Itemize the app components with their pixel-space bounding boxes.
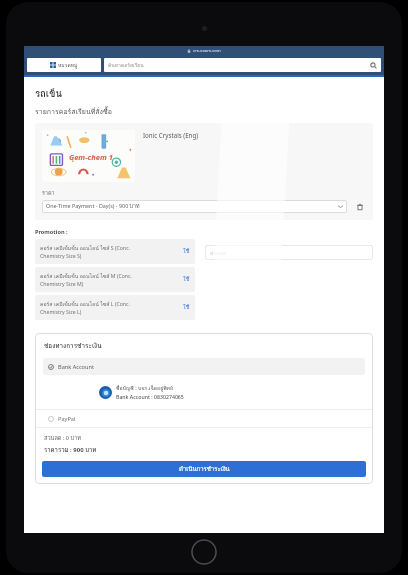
staticText: คอร์ส เคมีเข้มข้น ออนไลน์ ไซส์ S (Conc. … (40, 244, 183, 259)
staticText: รถเข็น (35, 86, 63, 101)
staticText: cre-exam.com (193, 48, 221, 54)
staticText: คอร์ส เคมีเข้มข้น ออนไลน์ ไซส์ L (Conc. … (40, 300, 183, 315)
button[interactable]: Bank Account (43, 358, 365, 375)
staticText: คอร์ส เคมีเข้มข้น ออนไลน์ ไซส์ M (Conc. … (40, 272, 183, 287)
staticText: ชื่อบัญชี : บจก.เจ็ดอยู่พิทย์ (116, 384, 174, 392)
button[interactable]: คอร์ส เคมีเข้มข้น ออนไลน์ ไซส์ S (Conc. … (35, 239, 195, 264)
staticText: ราคา (42, 189, 55, 198)
staticText: ส่วนลด (210, 249, 227, 257)
staticText: Ionic Crystals (Eng) (143, 131, 199, 139)
button[interactable]: ส่วนลด (205, 245, 373, 260)
staticText: Bank Account : 0830274065 (116, 393, 184, 400)
staticText: หมวดหมู่ (58, 61, 78, 69)
staticText: Gem-chem 1 (69, 152, 113, 162)
button[interactable]: คอร์ส เคมีเข้มข้น ออนไลน์ ไซส์ L (Conc. … (35, 295, 195, 320)
staticText: ค้นหาคอร์สเรียน (108, 61, 370, 69)
staticText: ดำเนินการชำระเงิน (179, 464, 230, 474)
button[interactable]: Home (27, 58, 101, 72)
button[interactable]: Remove item (354, 201, 366, 213)
button[interactable]: One-Time Payment - Day(s) - 900 บาท (42, 200, 347, 213)
button[interactable]: คอร์ส เคมีเข้มข้น ออนไลน์ ไซส์ M (Conc. … (35, 267, 195, 292)
staticText: ใช้ (183, 303, 190, 312)
button[interactable]: ดำเนินการชำระเงิน (42, 461, 366, 477)
button[interactable]: PayPal (35, 410, 373, 427)
staticText: PayPal (58, 415, 76, 423)
staticText: Promotion : (35, 228, 68, 236)
other: Search (370, 62, 377, 69)
staticText: ใช้ (183, 275, 190, 284)
staticText: ช่องทางการชำระเงิน (44, 341, 102, 351)
staticText: One-Time Payment - Day(s) - 900 บาท (46, 202, 338, 211)
staticText: Bank Account (58, 363, 94, 371)
staticText: ใช้ (183, 247, 190, 256)
button[interactable]: ค้นหาคอร์สเรียน (104, 58, 381, 72)
staticText: ราคารวม : 900 บาท (44, 445, 97, 455)
staticText: ส่วนลด : 0 บาท (44, 434, 81, 443)
staticText: รายการคอร์สเรียนที่สั่งซื้อ (35, 106, 112, 117)
